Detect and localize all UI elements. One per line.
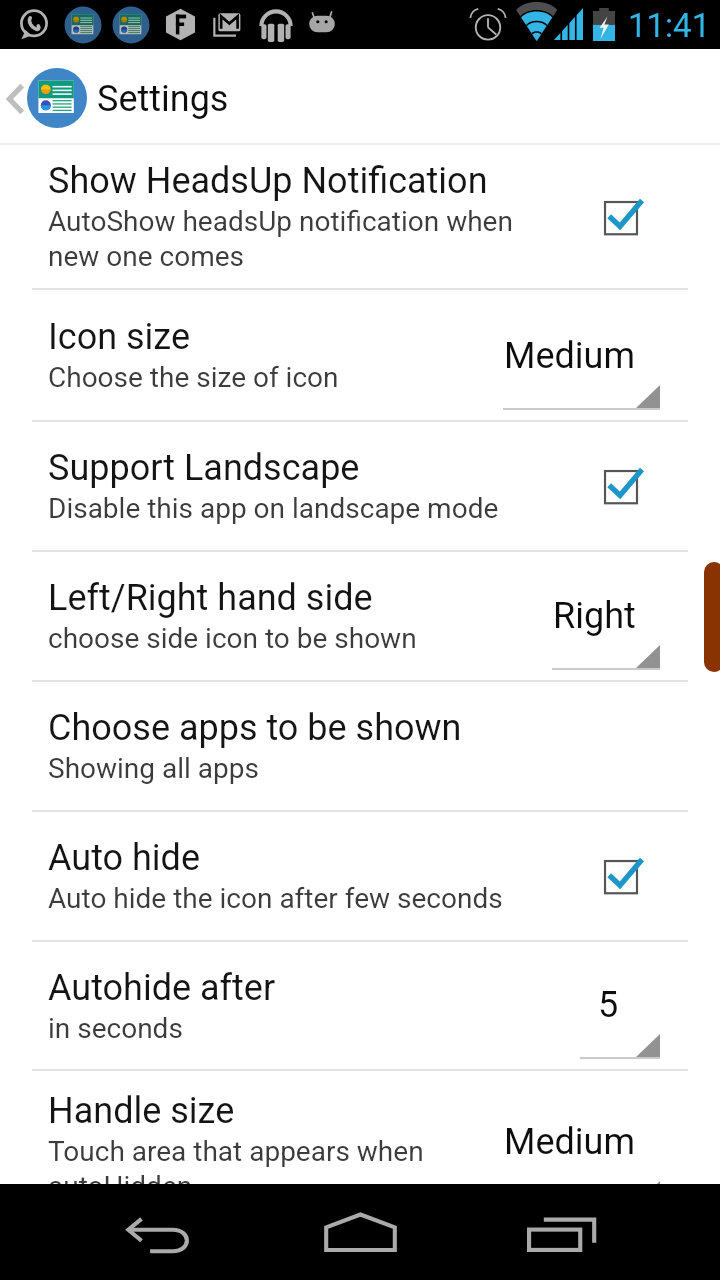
staticText: Autohide after [48, 967, 276, 1009]
staticText: AutoShow headsUp notification when new o… [48, 205, 513, 273]
staticText: Right [553, 595, 636, 637]
button[interactable]: Show HeadsUp Notification [0, 145, 720, 288]
staticText: Medium [504, 335, 635, 377]
staticText: Choose the size of icon [48, 361, 339, 394]
staticText: Icon size [48, 316, 190, 358]
button[interactable]: Icon size [0, 290, 720, 420]
button[interactable]: Back [0, 1184, 240, 1280]
button[interactable]: Navigate up [0, 49, 720, 143]
staticText: Show HeadsUp Notification [48, 160, 488, 202]
staticText: in seconds [48, 1012, 183, 1045]
staticText: Left/Right hand side [48, 577, 373, 619]
button[interactable]: Left/Right hand side [0, 552, 720, 680]
staticText: Showing all apps [48, 752, 259, 785]
button[interactable]: Home [240, 1184, 480, 1280]
staticText: Support Landscape [48, 447, 360, 489]
staticText: Medium [504, 1121, 635, 1163]
button[interactable]: Recent apps [480, 1184, 720, 1280]
staticText: Settings [97, 78, 229, 120]
staticText: Disable this app on landscape mode [48, 492, 499, 525]
button[interactable]: Autohide after [0, 942, 720, 1069]
button[interactable]: Choose apps to be shown [0, 682, 720, 810]
staticText: 5 [598, 984, 619, 1026]
button[interactable]: Handle size [0, 1071, 720, 1184]
button[interactable]: Side handle [704, 562, 720, 672]
staticText: Auto hide [48, 837, 200, 879]
staticText: Choose apps to be shown [48, 707, 462, 749]
staticText: Touch area that appears when autoHidden [48, 1135, 424, 1184]
button[interactable]: Support Landscape [0, 422, 720, 550]
staticText: Handle size [48, 1090, 235, 1132]
staticText: 11:41 [628, 6, 711, 45]
staticText: choose side icon to be shown [48, 622, 417, 655]
button[interactable]: Auto hide [0, 812, 720, 940]
staticText: Auto hide the icon after few seconds [48, 882, 503, 915]
